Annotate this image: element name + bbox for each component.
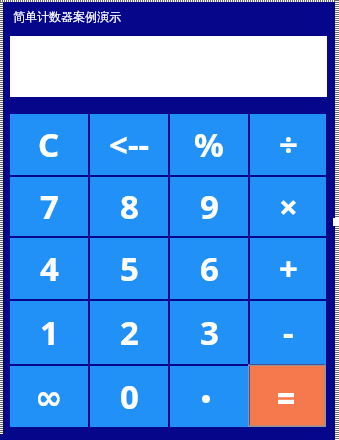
- staticText: -: [283, 310, 294, 355]
- button[interactable]: ×: [250, 177, 326, 236]
- staticText: 3: [200, 310, 219, 355]
- staticText: 5: [120, 246, 139, 291]
- button[interactable]: 5: [90, 238, 168, 299]
- button[interactable]: ∞: [10, 366, 88, 427]
- staticText: ∞: [35, 378, 63, 416]
- staticText: 9: [200, 184, 219, 229]
- staticText: 8: [120, 184, 139, 229]
- staticText: 2: [120, 310, 139, 355]
- button[interactable]: ÷: [250, 114, 326, 175]
- staticText: 6: [200, 246, 219, 291]
- staticText: <--: [109, 122, 149, 167]
- staticText: 4: [40, 246, 59, 291]
- staticText: C: [38, 122, 60, 167]
- button[interactable]: 6: [170, 238, 248, 299]
- staticText: 1: [40, 310, 59, 355]
- button[interactable]: 2: [90, 301, 168, 364]
- button[interactable]: 1: [10, 301, 88, 364]
- staticText: %: [194, 122, 224, 167]
- staticText: 0: [120, 374, 139, 419]
- button[interactable]: [250, 366, 326, 427]
- button[interactable]: 8: [90, 177, 168, 236]
- button[interactable]: 0: [90, 366, 168, 427]
- staticText: +: [279, 246, 298, 291]
- button[interactable]: 4: [10, 238, 88, 299]
- button[interactable]: +: [250, 238, 326, 299]
- button[interactable]: %: [170, 114, 248, 175]
- staticText: 7: [40, 184, 59, 229]
- button[interactable]: 7: [10, 177, 88, 236]
- button[interactable]: -: [250, 301, 326, 364]
- button[interactable]: 3: [170, 301, 248, 364]
- button[interactable]: 9: [170, 177, 248, 236]
- staticText: 简单计数器案例演示: [13, 9, 121, 24]
- staticText: ÷: [279, 122, 298, 167]
- button[interactable]: <--: [90, 114, 168, 175]
- button[interactable]: [170, 366, 248, 427]
- staticText: ×: [279, 184, 298, 229]
- button[interactable]: C: [10, 114, 88, 175]
